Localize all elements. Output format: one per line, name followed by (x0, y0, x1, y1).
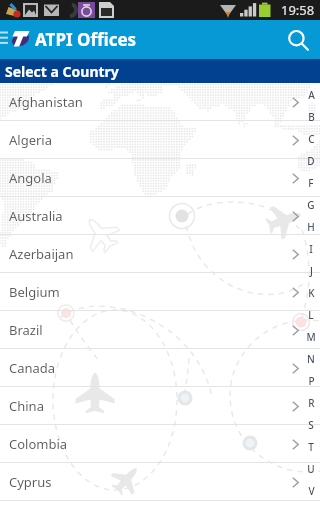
staticText: D (307, 154, 315, 168)
staticText: R (308, 396, 315, 410)
button[interactable]: China (0, 387, 320, 425)
staticText: L (308, 308, 314, 322)
button[interactable]: Australia (0, 197, 320, 235)
button[interactable]: Canada (0, 349, 320, 387)
staticText: Angola (9, 169, 52, 187)
staticText: Brazil (9, 321, 43, 339)
button[interactable]: H (302, 216, 320, 238)
staticText: Australia (9, 207, 63, 225)
staticText: Afghanistan (9, 93, 83, 111)
staticText: B (308, 110, 315, 124)
staticText: ATPI Offices (35, 28, 137, 51)
button[interactable]: S (302, 414, 320, 436)
staticText: Azerbaijan (9, 245, 74, 263)
staticText: J (310, 264, 313, 278)
button[interactable]: K (302, 282, 320, 304)
staticText: T (308, 440, 314, 454)
staticText: Select a Country (5, 62, 119, 81)
staticText: 19:58 (281, 1, 315, 19)
button[interactable]: Belgium (0, 273, 320, 311)
staticText: N (307, 352, 315, 366)
staticText: Algeria (9, 131, 53, 149)
button[interactable]: L (302, 304, 320, 326)
button[interactable]: C (302, 128, 320, 150)
button[interactable]: Angola (0, 159, 320, 197)
staticText: V (308, 484, 315, 498)
staticText: S (308, 418, 314, 432)
button[interactable]: D (302, 150, 320, 172)
staticText: Belgium (9, 283, 60, 301)
button[interactable]: Search (276, 20, 320, 59)
button[interactable]: Afghanistan (0, 83, 320, 121)
staticText: A (308, 88, 315, 102)
button[interactable]: G (302, 194, 320, 216)
button[interactable]: Open navigation drawer (0, 20, 11, 59)
staticText: P (308, 374, 315, 388)
button[interactable]: B (302, 106, 320, 128)
button[interactable]: P (302, 370, 320, 392)
staticText: China (9, 397, 44, 415)
button[interactable]: R (302, 392, 320, 414)
button[interactable]: N (302, 348, 320, 370)
staticText: K (308, 286, 315, 300)
staticText: H (307, 220, 315, 234)
button[interactable]: Brazil (0, 311, 320, 349)
staticText: I (309, 242, 313, 256)
button[interactable]: F (302, 172, 320, 194)
button[interactable]: M (302, 326, 320, 348)
button[interactable]: T (302, 436, 320, 458)
button[interactable]: U (302, 458, 320, 480)
staticText: M (306, 330, 316, 344)
button[interactable]: Algeria (0, 121, 320, 159)
staticText: U (307, 462, 315, 476)
staticText: F (308, 176, 314, 190)
button[interactable]: V (302, 480, 320, 502)
staticText: C (308, 132, 315, 146)
button[interactable]: A (302, 84, 320, 106)
button[interactable]: Cyprus (0, 463, 320, 501)
staticText: Canada (9, 359, 56, 377)
staticText: Colombia (9, 435, 68, 453)
button[interactable]: Colombia (0, 425, 320, 463)
button[interactable]: J (302, 260, 320, 282)
button[interactable]: I (302, 238, 320, 260)
staticText: G (307, 198, 315, 212)
staticText: Cyprus (9, 473, 52, 491)
button[interactable]: Azerbaijan (0, 235, 320, 273)
